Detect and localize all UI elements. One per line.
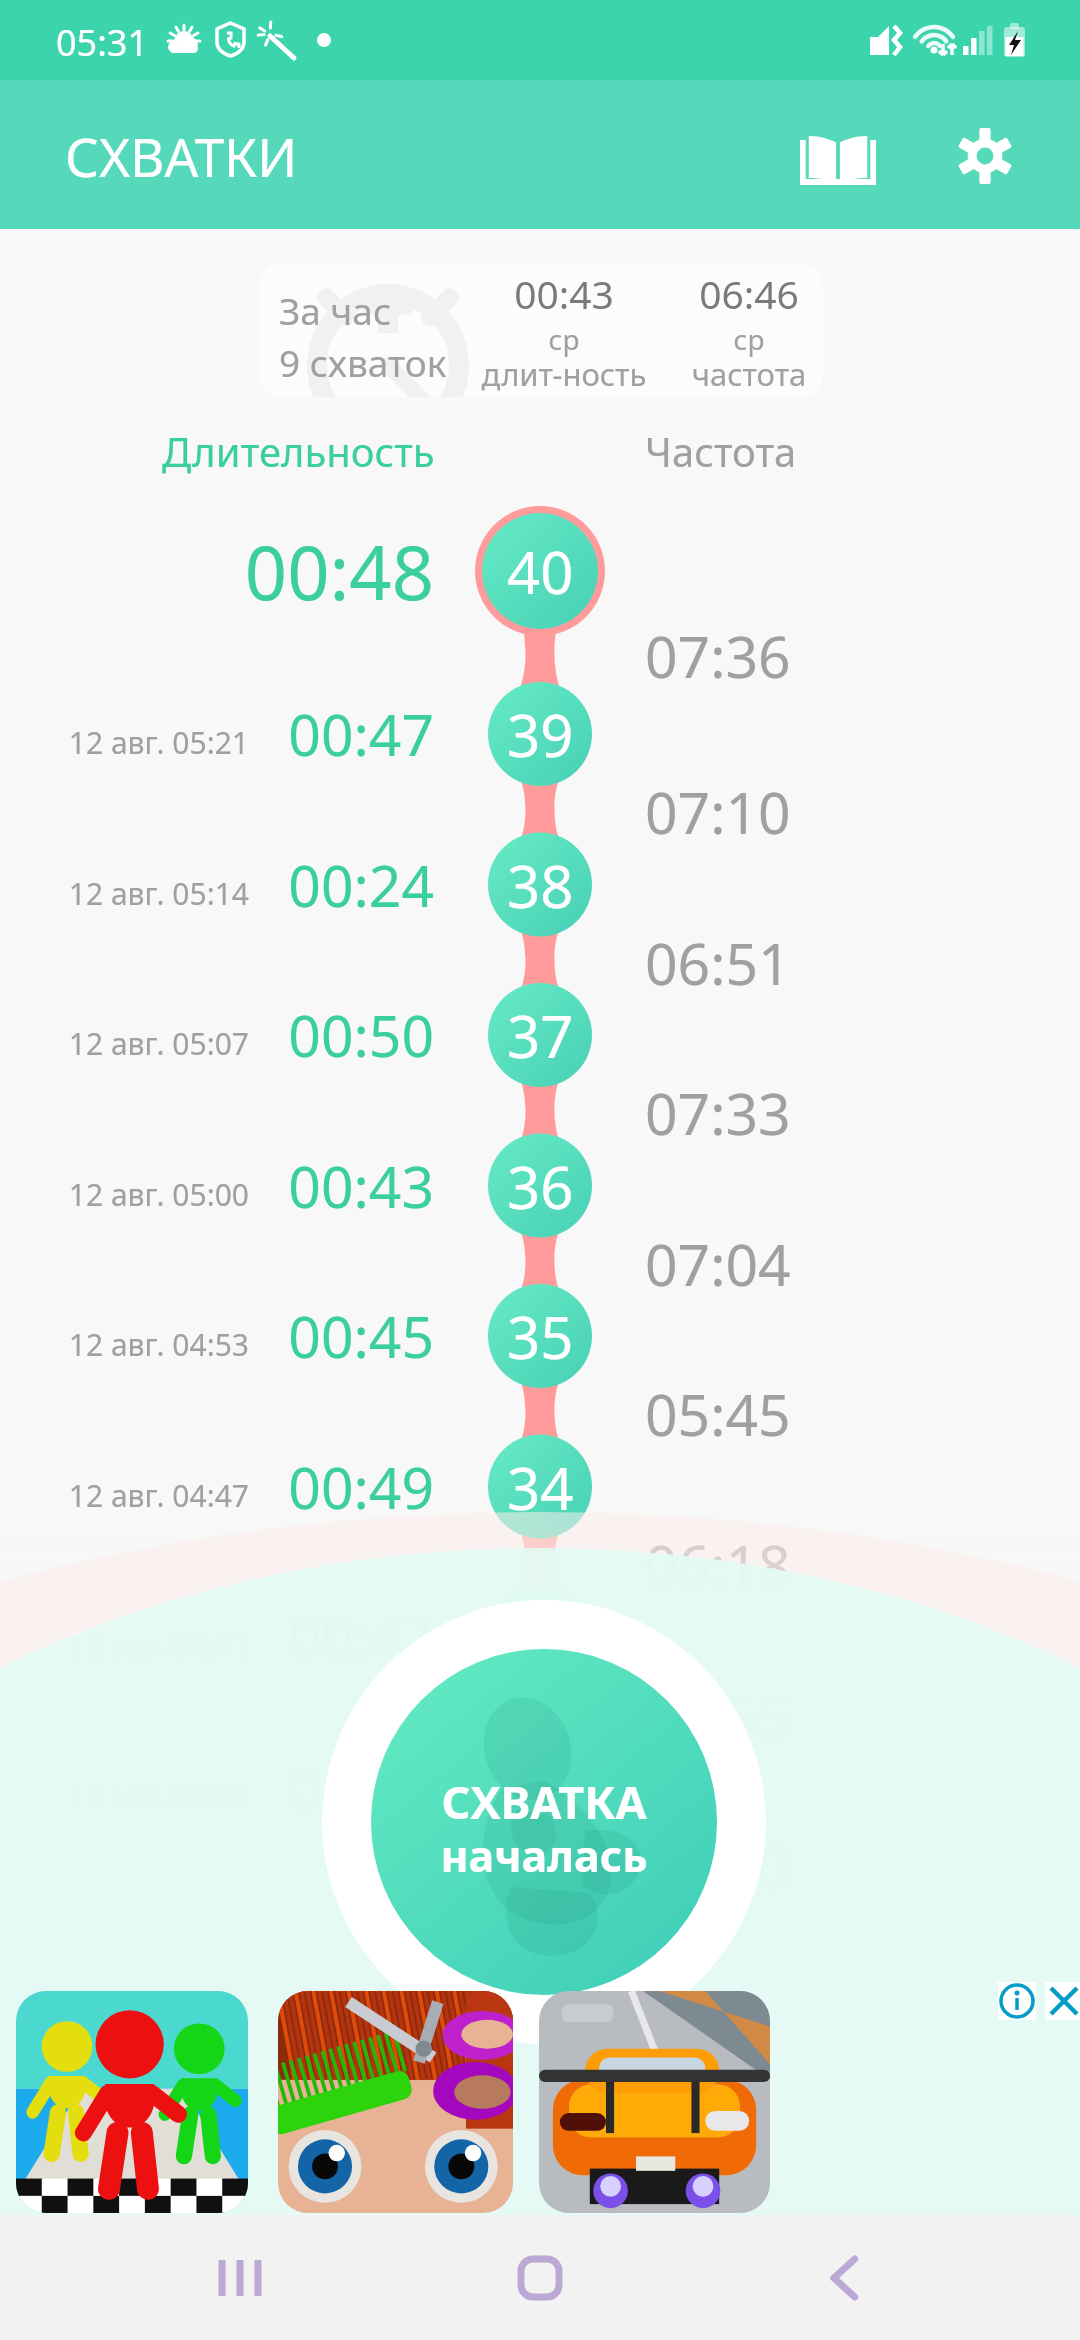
button[interactable]: СХВАТКА — [371, 1649, 717, 1995]
staticText: ср — [659, 320, 823, 358]
button[interactable]: Back — [790, 2223, 900, 2333]
staticText: 06:18 — [645, 1526, 791, 1604]
staticText: 12 авг. 05:00 — [2, 1174, 249, 1215]
staticText: 07:33 — [645, 1074, 791, 1152]
button[interactable]: Advertisement — [16, 1991, 248, 2213]
staticText: 12 авг. 05:07 — [2, 1023, 249, 1064]
staticText: 39 — [507, 695, 574, 774]
staticText: 00:46 — [182, 1749, 434, 1827]
staticText: 12 авг. 04:53 — [2, 1324, 249, 1365]
staticText: 12 авг. 05:14 — [2, 873, 249, 914]
staticText: 06:46 — [659, 267, 823, 320]
staticText: 12 авг. 04:47 — [2, 1475, 249, 1516]
button[interactable]: Settings — [931, 102, 1039, 210]
staticText: Длительность — [162, 424, 435, 478]
staticText: 33 — [507, 1598, 574, 1677]
staticText: СХВАТКА — [371, 1771, 717, 1832]
button[interactable]: Advertisement — [278, 1991, 513, 2213]
staticText: 00:50 — [182, 996, 434, 1074]
staticText: 07:04 — [645, 1225, 791, 1303]
button[interactable]: Advertisement — [539, 1991, 770, 2213]
staticText: длит-ность — [474, 353, 654, 395]
staticText: 06:51 — [645, 924, 791, 1002]
staticText: 00:47 — [182, 1598, 434, 1676]
staticText: 07:10 — [645, 773, 791, 851]
staticText: СХВАТКИ — [65, 120, 298, 192]
staticText: 07:36 — [645, 617, 791, 695]
button[interactable]: Recents — [185, 2223, 295, 2333]
staticText: 00:47 — [182, 695, 434, 773]
staticText: 35 — [507, 1297, 574, 1376]
button[interactable]: За час — [259, 263, 823, 397]
staticText: 12 авг. 04:41 — [2, 1625, 249, 1666]
staticText: 38 — [507, 846, 574, 925]
staticText: 40 — [507, 532, 574, 611]
staticText: 06:40 — [645, 1827, 791, 1905]
staticText: 12 авг. 05:21 — [2, 722, 249, 763]
staticText: началась — [371, 1826, 717, 1885]
staticText: 00:43 — [182, 1147, 434, 1225]
staticText: 05:31 — [56, 18, 149, 67]
staticText: За час — [279, 285, 392, 335]
staticText: ср — [474, 320, 654, 358]
staticText: Частота — [645, 424, 797, 478]
staticText: частота — [659, 353, 823, 395]
staticText: 37 — [507, 996, 574, 1075]
staticText: 00:43 — [474, 267, 654, 320]
staticText: 00:24 — [182, 846, 434, 924]
button[interactable]: Ad info — [998, 1982, 1036, 2020]
staticText: 34 — [507, 1448, 574, 1527]
staticText: 00:48 — [182, 521, 434, 622]
button[interactable]: Guide — [784, 106, 892, 214]
staticText: 9 схваток — [279, 337, 447, 387]
staticText: 06:55 — [645, 1676, 791, 1754]
staticText: 00:45 — [182, 1297, 434, 1375]
staticText: 00:49 — [182, 1448, 434, 1526]
button[interactable]: Close ad — [1045, 1982, 1080, 2020]
staticText: 32 — [507, 1749, 574, 1828]
staticText: 36 — [507, 1147, 574, 1226]
button[interactable]: Home — [485, 2223, 595, 2333]
staticText: 05:45 — [645, 1375, 791, 1453]
